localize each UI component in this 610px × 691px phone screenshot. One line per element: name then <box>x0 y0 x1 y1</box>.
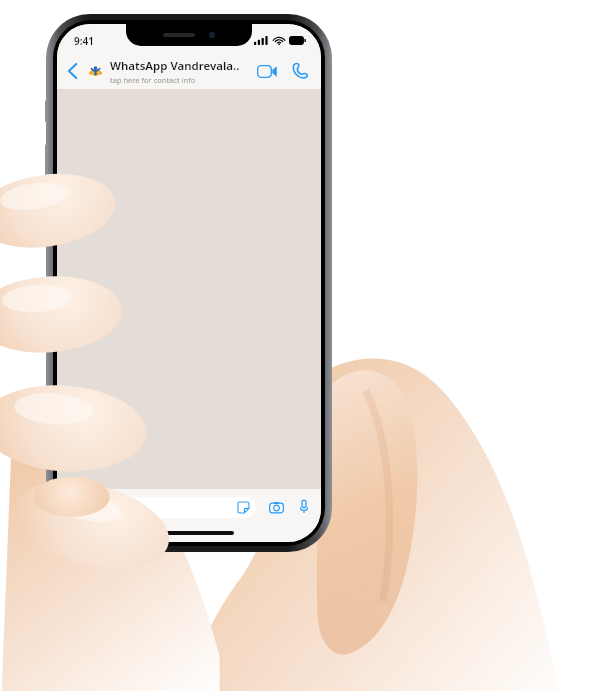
button[interactable]: WhatsApp Vandrevala.. <box>87 53 251 89</box>
button[interactable]: Attach <box>63 494 89 520</box>
button[interactable]: Back <box>57 53 87 89</box>
button[interactable]: Voice message <box>291 494 317 520</box>
staticText: 9:41 <box>74 34 94 48</box>
staticText: WhatsApp Vandrevala.. <box>110 58 240 74</box>
button[interactable]: Video call <box>251 53 283 89</box>
staticText: tap here for contact info <box>110 75 196 85</box>
button[interactable]: Voice call <box>283 53 317 89</box>
button[interactable]: Stickers <box>92 497 256 518</box>
button[interactable]: Camera <box>263 494 289 520</box>
other: Stickers <box>233 497 254 518</box>
